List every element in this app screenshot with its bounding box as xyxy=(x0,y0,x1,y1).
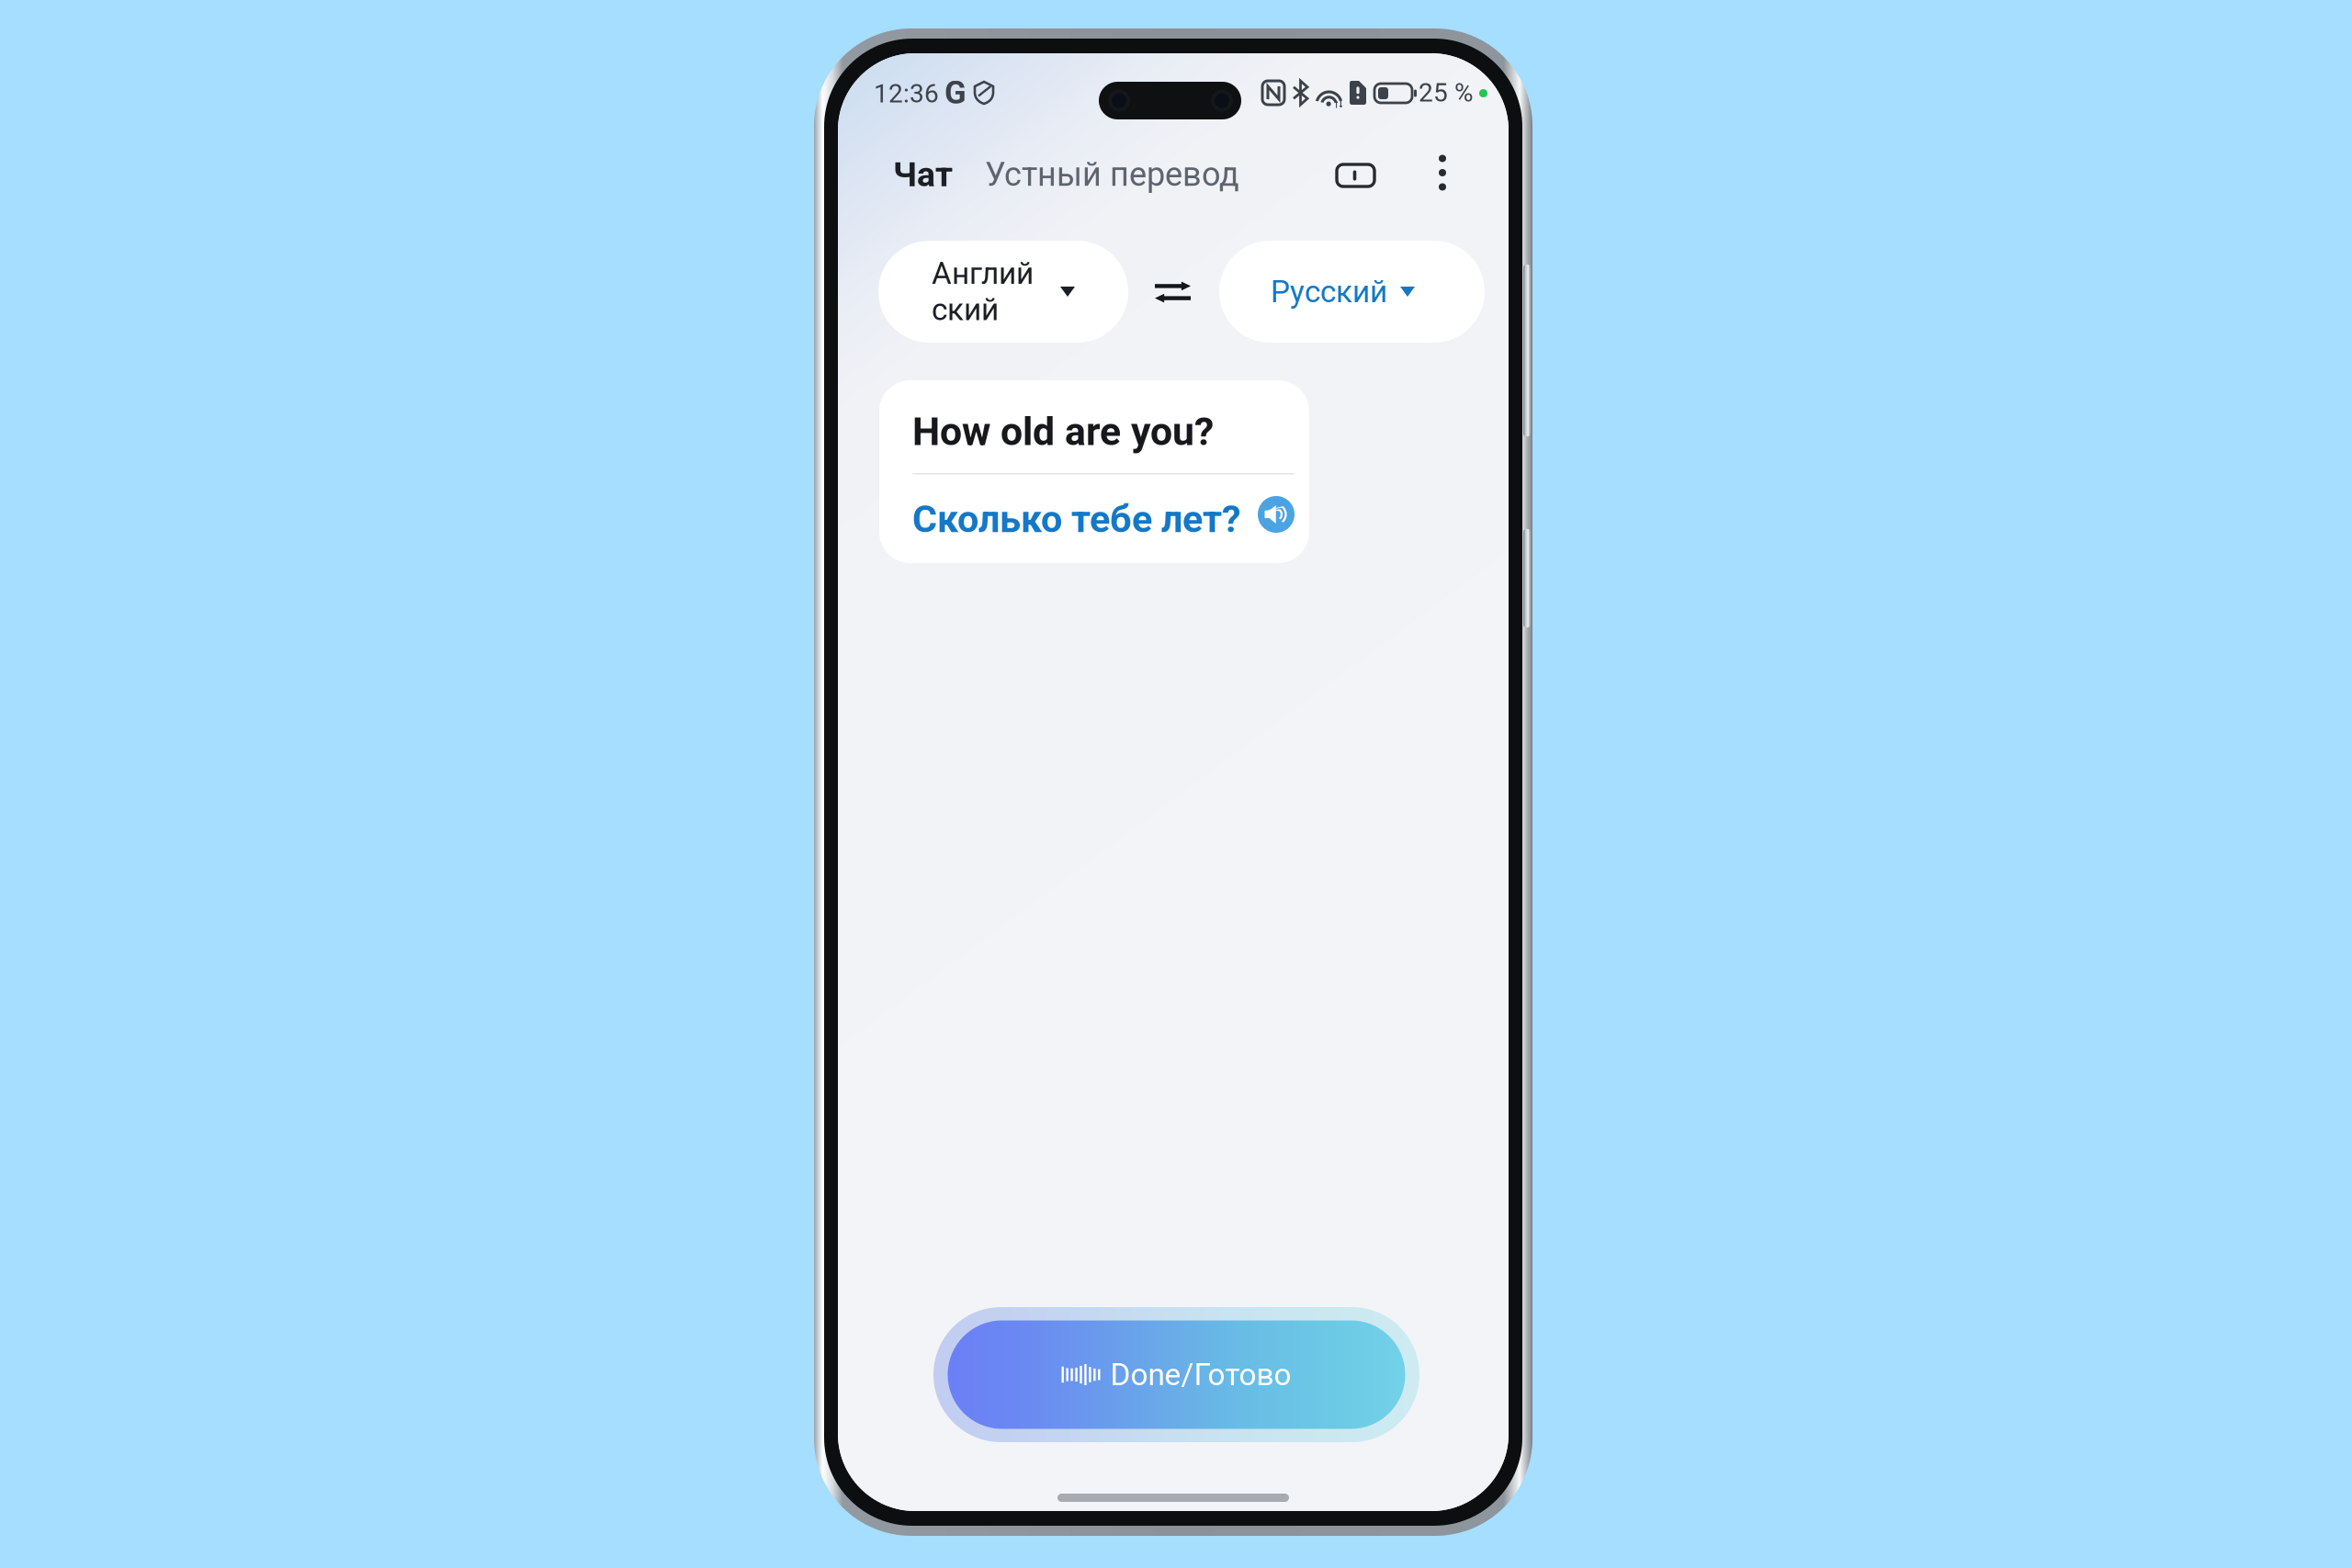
button[interactable]: Captions xyxy=(1318,150,1393,201)
staticText: Чат xyxy=(893,154,953,195)
staticText: 12:36 xyxy=(874,79,939,109)
staticText: Done/Готово xyxy=(1110,1357,1291,1393)
staticText: G xyxy=(944,74,967,111)
button[interactable]: Устный перевод xyxy=(963,148,1261,201)
staticText: 25 % xyxy=(1419,78,1474,108)
staticText: Англий ский xyxy=(932,256,1034,327)
button[interactable]: More options xyxy=(1417,147,1468,198)
staticText: Устный перевод xyxy=(985,155,1239,194)
staticText: How old are you? xyxy=(912,409,1214,455)
button[interactable]: Swap languages xyxy=(1144,266,1202,318)
button[interactable]: Чат xyxy=(871,148,981,201)
button[interactable]: Англий ский xyxy=(878,241,1128,343)
staticText: Сколько тебе лет? xyxy=(912,497,1241,541)
staticText: Русский xyxy=(1271,274,1387,310)
button[interactable]: Русский xyxy=(1219,241,1485,343)
button[interactable]: Play translation xyxy=(1258,496,1295,533)
button[interactable]: Done/Готово xyxy=(933,1307,1419,1442)
